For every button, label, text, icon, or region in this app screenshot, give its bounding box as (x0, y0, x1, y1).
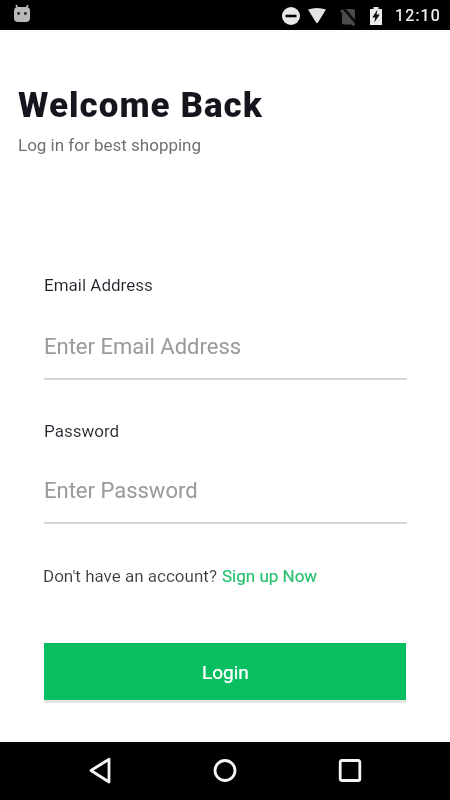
staticText: Password (44, 421, 120, 441)
staticText: Login (202, 661, 249, 683)
staticText: Enter Password (44, 478, 198, 504)
staticText: 12:10 (395, 6, 441, 25)
staticText: Enter Email Address (44, 334, 242, 360)
staticText: Welcome Back (18, 85, 263, 126)
button[interactable]: Sign up Now (222, 566, 318, 586)
staticText: Don't have an account? (43, 566, 222, 586)
button[interactable]: Login (44, 643, 406, 700)
staticText: Log in for best shopping (18, 135, 202, 155)
button[interactable] (76, 747, 124, 795)
staticText: Email Address (44, 275, 153, 295)
button[interactable] (326, 747, 374, 795)
button[interactable] (201, 747, 249, 795)
